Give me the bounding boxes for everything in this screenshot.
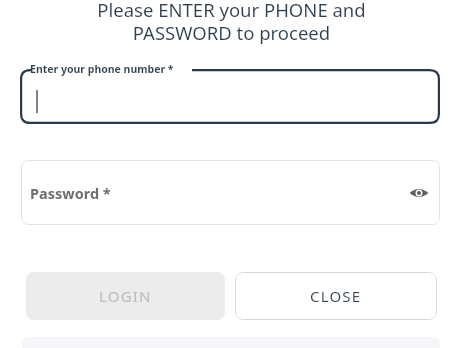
button[interactable]: Show password [399,173,439,213]
button[interactable]: CLOSE [235,272,437,320]
button[interactable]: Enter your phone number * [20,69,440,124]
button[interactable]: Password * [21,160,440,225]
staticText: Please ENTER your PHONE and PASSWORD to … [0,0,463,45]
button[interactable]: LOGIN [26,272,225,320]
staticText: LOGIN [99,286,152,306]
staticText: CLOSE [310,286,362,306]
staticText: Password * [30,183,111,203]
staticText: Enter your phone number * [30,62,174,76]
